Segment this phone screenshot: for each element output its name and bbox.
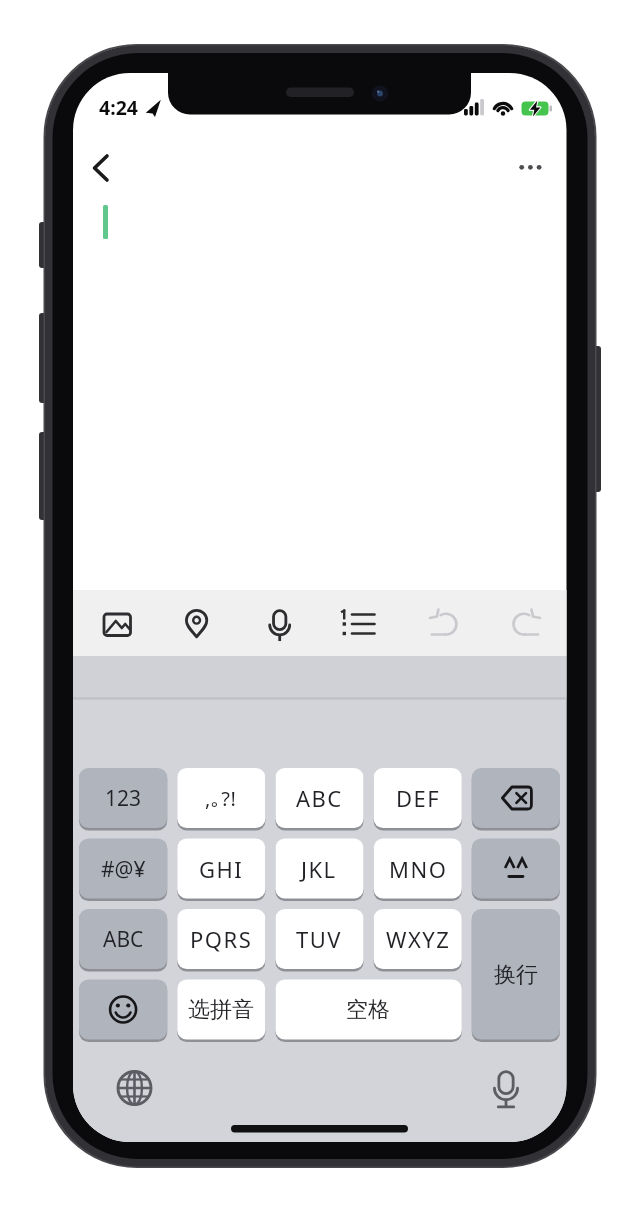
- button[interactable]: 空格: [275, 980, 461, 1040]
- staticText: GHI: [199, 854, 244, 884]
- button[interactable]: [510, 147, 550, 187]
- staticText: #@¥: [101, 855, 146, 884]
- staticText: 换行: [494, 961, 538, 989]
- staticText: 空格: [346, 996, 390, 1024]
- staticText: ,｡?!: [205, 785, 237, 812]
- button[interactable]: 123: [79, 768, 167, 828]
- button[interactable]: [422, 602, 466, 646]
- button[interactable]: JKL: [275, 839, 363, 899]
- button[interactable]: ,｡?!: [177, 768, 265, 828]
- button[interactable]: 4:24: [95, 94, 141, 116]
- button[interactable]: PQRS: [177, 909, 265, 969]
- button[interactable]: [79, 980, 167, 1040]
- staticText: MNO: [389, 854, 448, 884]
- button[interactable]: MNO: [374, 839, 462, 899]
- button[interactable]: [483, 1066, 529, 1112]
- button[interactable]: WXYZ: [374, 909, 462, 969]
- staticText: PQRS: [190, 924, 253, 954]
- button[interactable]: [472, 839, 560, 899]
- button[interactable]: ABC: [275, 768, 363, 828]
- button[interactable]: [472, 768, 560, 828]
- button[interactable]: DEF: [374, 768, 462, 828]
- button[interactable]: [258, 602, 302, 646]
- button[interactable]: [94, 602, 138, 646]
- button[interactable]: [504, 602, 548, 646]
- staticText: ABC: [296, 783, 343, 813]
- button[interactable]: ABC: [79, 909, 167, 969]
- staticText: 4:24: [99, 94, 138, 116]
- staticText: TUV: [296, 924, 343, 954]
- staticText: 选拼音: [188, 996, 254, 1024]
- button[interactable]: [340, 602, 384, 646]
- staticText: DEF: [396, 783, 441, 813]
- button[interactable]: #@¥: [79, 839, 167, 899]
- button[interactable]: TUV: [275, 909, 363, 969]
- staticText: 123: [105, 784, 142, 813]
- button[interactable]: 选拼音: [177, 980, 265, 1040]
- button[interactable]: GHI: [177, 839, 265, 899]
- button[interactable]: [112, 1066, 158, 1112]
- button[interactable]: [84, 146, 124, 186]
- staticText: WXYZ: [386, 924, 451, 954]
- staticText: ABC: [103, 925, 144, 954]
- staticText: JKL: [301, 854, 337, 884]
- button[interactable]: 换行: [472, 909, 560, 1040]
- button[interactable]: [176, 602, 220, 646]
